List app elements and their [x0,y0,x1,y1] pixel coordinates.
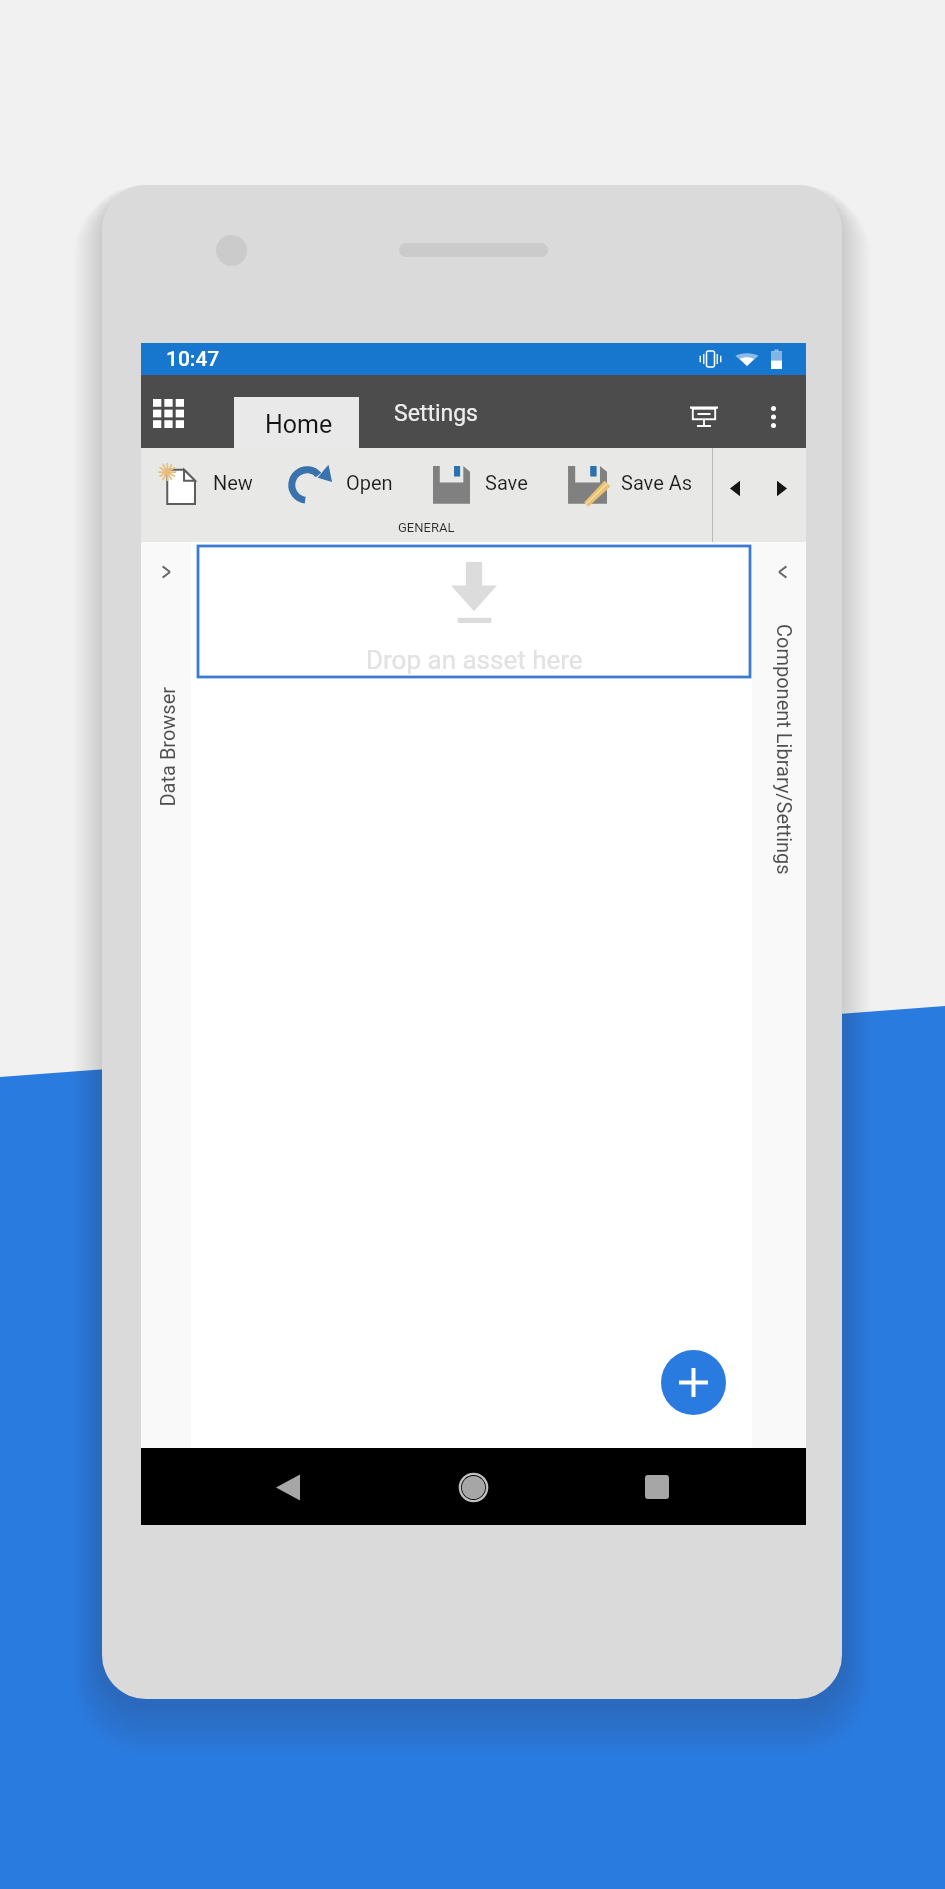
staticText: New [213,471,253,494]
staticText: Component Library/Settings [773,624,796,875]
button[interactable]: Apps [141,375,234,448]
button[interactable]: Previous [717,470,753,506]
button[interactable]: Home [234,397,359,448]
staticText: Data Browser [155,686,178,806]
staticText: 10:47 [166,347,220,372]
button[interactable] [420,448,559,513]
button[interactable]: Next [764,470,800,506]
button[interactable]: Add [661,1350,726,1415]
staticText: Home [265,410,333,439]
button[interactable] [555,448,695,513]
staticText: Open [346,471,393,494]
staticText: Settings [394,400,478,427]
button[interactable]: Recents [621,1451,693,1523]
button[interactable] [153,448,287,513]
button[interactable]: Data Browser [141,542,191,1448]
staticText: GENERAL [398,520,455,535]
button[interactable]: Component Library/Settings [752,542,806,1448]
button[interactable]: Drop an asset here [198,546,750,677]
button[interactable] [277,448,420,513]
button[interactable]: Settings [359,375,525,448]
button[interactable]: Present [661,375,733,448]
staticText: Save As [621,471,693,494]
button[interactable]: Back [252,1451,324,1523]
staticText: Drop an asset here [366,645,583,675]
staticText: Save [485,471,528,494]
button[interactable]: More options [741,375,806,448]
button[interactable]: Home [437,1451,509,1523]
